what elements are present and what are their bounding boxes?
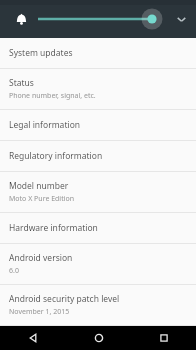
button[interactable]: Status [0,69,196,109]
button[interactable]: Model number [0,172,196,212]
staticText: Moto X Pure Edition [9,194,75,204]
staticText: Model number [9,180,69,192]
staticText: Regulatory information [9,150,103,162]
button[interactable]: Legal information [0,110,196,140]
button[interactable]: System updates [0,38,196,68]
button[interactable]: Hardware information [0,213,196,243]
staticText: Android security patch level [9,293,120,305]
button[interactable]: Ringer mode [11,9,31,29]
staticText: System updates [9,47,73,59]
staticText: Status [9,77,34,89]
staticText: 6.0 [9,266,19,276]
button[interactable]: Recent apps [131,326,196,350]
button[interactable]: Expand volume controls [172,10,190,28]
button[interactable]: Back [0,326,66,350]
button[interactable]: Android security patch level [0,285,196,325]
staticText: Phone number, signal, etc. [9,91,96,101]
button[interactable]: Regulatory information [0,141,196,171]
button[interactable]: Home [66,326,131,350]
staticText: Legal information [9,119,81,131]
staticText: Hardware information [9,222,98,234]
button[interactable]: Android version [0,244,196,284]
staticText: Android version [9,252,73,264]
button[interactable]: Volume slider [36,4,164,34]
staticText: November 1, 2015 [9,307,70,317]
